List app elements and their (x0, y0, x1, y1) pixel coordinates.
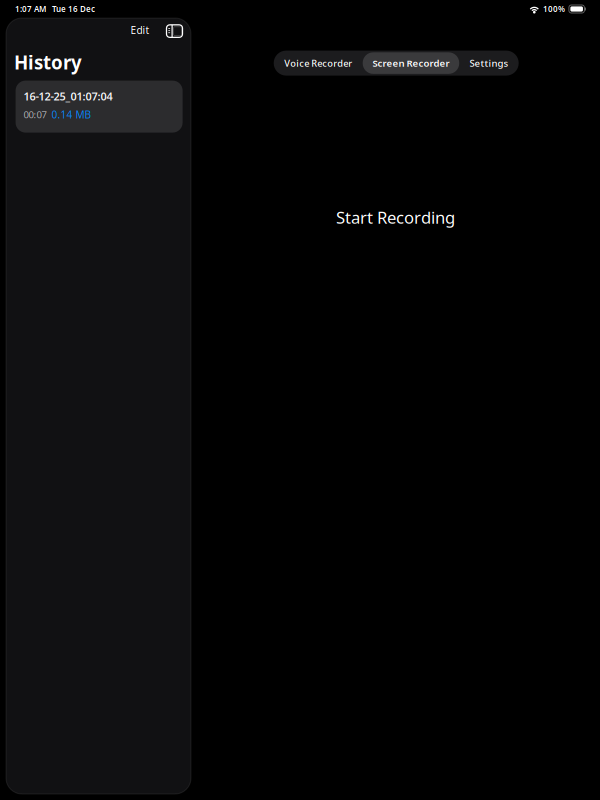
button[interactable]: Screen Recorder (363, 52, 459, 74)
button[interactable]: Voice Recorder (274, 51, 363, 76)
button[interactable]: Settings (459, 51, 519, 76)
staticText: 0.14 MB (52, 108, 92, 121)
button[interactable]: Edit (120, 19, 157, 43)
staticText: 1:07 AM Tue 16 Dec (15, 4, 95, 14)
button[interactable]: 16-12-25_01:07:04 (16, 81, 183, 133)
staticText: Edit (130, 23, 149, 37)
staticText: Start Recording (336, 206, 455, 229)
staticText: Settings (469, 57, 508, 70)
staticText: 100% (543, 4, 565, 14)
staticText: Voice Recorder (284, 57, 352, 69)
staticText: History (14, 50, 82, 75)
staticText: 16-12-25_01:07:04 (24, 89, 113, 104)
staticText: Screen Recorder (372, 57, 449, 70)
staticText: 00:07 (24, 108, 47, 121)
button[interactable]: Toggle Sidebar (157, 20, 191, 42)
button[interactable]: Start Recording (322, 198, 469, 237)
